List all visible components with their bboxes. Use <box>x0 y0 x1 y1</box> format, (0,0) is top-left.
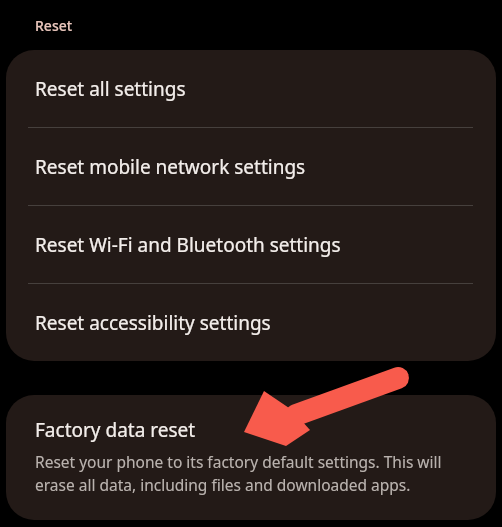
staticText: Reset Wi-Fi and Bluetooth settings <box>35 232 341 258</box>
button[interactable]: Reset accessibility settings <box>6 284 496 361</box>
staticText: Reset mobile network settings <box>35 154 306 180</box>
button[interactable]: Reset all settings <box>6 50 496 127</box>
staticText: Reset all settings <box>35 76 186 102</box>
button[interactable]: Factory data reset <box>6 395 496 520</box>
staticText: Factory data reset <box>35 417 196 443</box>
staticText: Reset your phone to its factory default … <box>35 451 472 496</box>
staticText: Reset accessibility settings <box>35 310 271 336</box>
staticText: Reset <box>35 16 73 35</box>
button[interactable]: Reset Wi-Fi and Bluetooth settings <box>6 206 496 283</box>
button[interactable]: Reset mobile network settings <box>6 128 496 205</box>
